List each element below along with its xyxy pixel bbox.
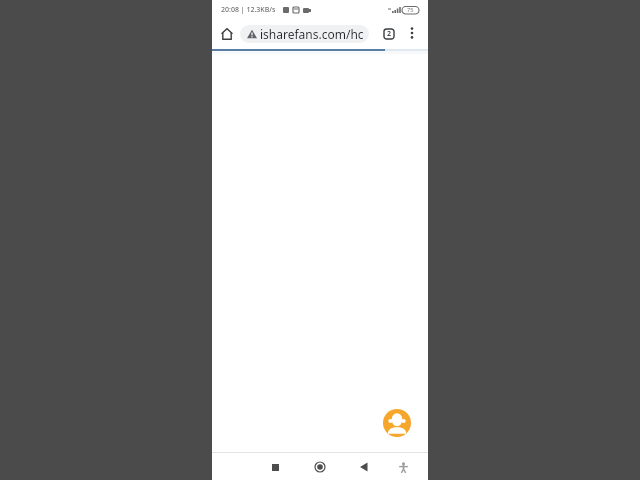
button[interactable] [404,25,420,41]
button[interactable] [391,455,415,479]
button[interactable] [219,26,235,42]
button[interactable] [383,409,411,437]
button[interactable] [308,455,332,479]
staticText: 75 [407,6,414,13]
button[interactable]: 2 [380,25,398,43]
button[interactable]: isharefans.com/hc [240,25,369,43]
button[interactable] [263,455,287,479]
staticText: isharefans.com/hc [260,26,364,42]
button[interactable] [352,455,376,479]
staticText: 20:08 | 12.3KB/s [221,5,276,15]
staticText: 2 [387,29,392,39]
